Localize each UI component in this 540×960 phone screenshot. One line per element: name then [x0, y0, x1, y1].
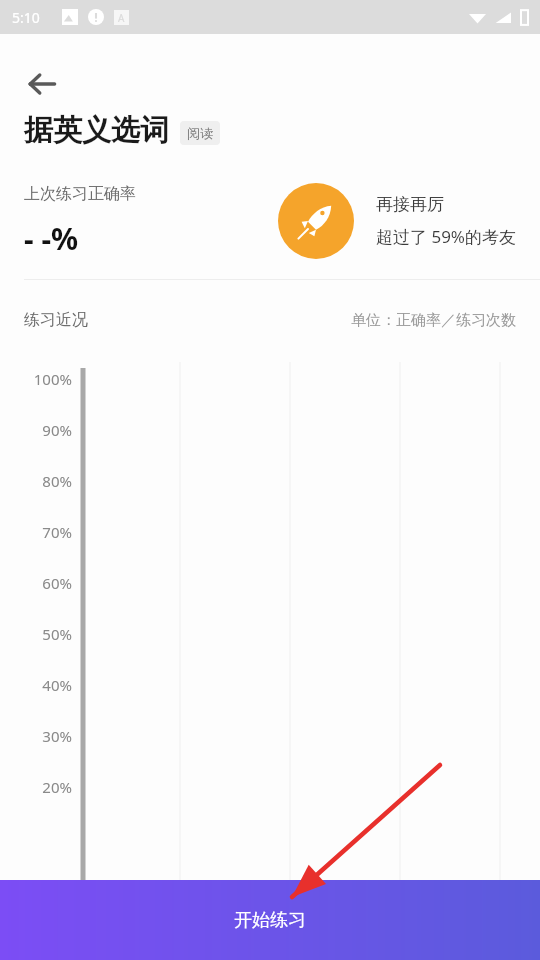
- button[interactable]: 开始练习: [0, 880, 540, 960]
- staticText: 再接再厉: [376, 194, 444, 215]
- staticText: 80%: [42, 471, 72, 491]
- staticText: 据英义选词: [24, 112, 169, 149]
- button[interactable]: 阅读: [180, 121, 220, 145]
- staticText: 超过了 59%的考友: [376, 225, 516, 248]
- staticText: 100%: [33, 369, 72, 389]
- staticText: 30%: [42, 726, 72, 746]
- staticText: 70%: [42, 522, 72, 542]
- staticText: 上次练习正确率: [24, 184, 136, 204]
- staticText: - -%: [24, 218, 79, 259]
- staticText: 40%: [42, 675, 72, 695]
- button[interactable]: Back: [14, 56, 70, 112]
- staticText: 练习近况: [24, 310, 88, 330]
- staticText: 5:10: [12, 8, 40, 27]
- staticText: 90%: [42, 420, 72, 440]
- staticText: 单位：正确率／练习次数: [351, 311, 516, 330]
- staticText: 阅读: [187, 125, 213, 141]
- staticText: A: [118, 11, 125, 25]
- staticText: 60%: [42, 573, 72, 593]
- staticText: 开始练习: [234, 909, 306, 932]
- staticText: 20%: [42, 777, 72, 797]
- staticText: 50%: [42, 624, 72, 644]
